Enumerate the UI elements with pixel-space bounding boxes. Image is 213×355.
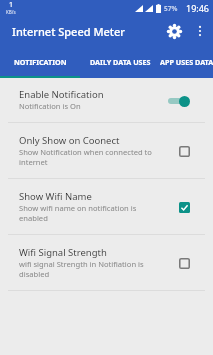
staticText: APP USES DATA — [160, 57, 213, 67]
button[interactable]: Enable Notification — [0, 78, 213, 123]
staticText: Show Wifi Name — [19, 190, 92, 203]
button[interactable]: More options — [191, 22, 209, 40]
staticText: Internet Speed Meter — [12, 24, 126, 39]
staticText: 1 — [9, 0, 14, 10]
staticText: DAILY DATA USES — [90, 57, 151, 67]
button[interactable]: NOTIFICATION — [0, 47, 80, 78]
button[interactable]: Checked — [179, 202, 190, 213]
staticText: Enable Notification — [19, 88, 104, 101]
staticText: Show Notification when connected to inte… — [19, 147, 159, 167]
staticText: wifi signal Strength in Notifiation is d… — [19, 259, 159, 279]
button[interactable]: Toggle enable notification — [168, 95, 190, 107]
staticText: 19:46 — [186, 2, 210, 14]
staticText: Notification is On — [19, 101, 81, 111]
staticText: KB/s — [6, 9, 16, 14]
staticText: Only Show on Coonect — [19, 134, 120, 147]
staticText: Show wifi name on notification is enable… — [19, 203, 159, 223]
button[interactable]: APP USES DATA — [160, 47, 213, 78]
staticText: 57% — [164, 4, 178, 13]
button[interactable]: Only Show on Coonect — [0, 123, 213, 179]
button[interactable]: DAILY DATA USES — [80, 47, 160, 78]
button[interactable]: Show Wifi Name — [0, 179, 213, 235]
staticText: NOTIFICATION — [14, 57, 67, 67]
button[interactable]: Wifi Signal Strength — [0, 235, 213, 291]
button[interactable]: Settings — [164, 21, 184, 41]
button[interactable]: Unchecked — [179, 146, 190, 157]
button[interactable]: Unchecked — [179, 258, 190, 269]
staticText: Wifi Signal Strength — [19, 246, 107, 259]
